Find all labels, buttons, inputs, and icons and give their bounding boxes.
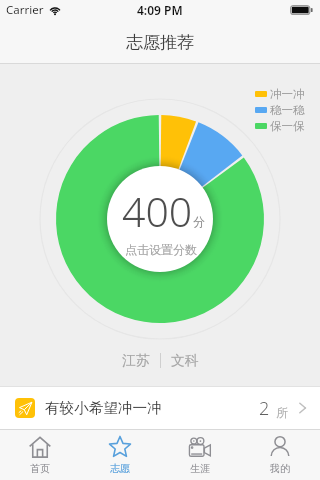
staticText: Carrier: [6, 2, 44, 18]
staticText: 志愿: [110, 462, 130, 475]
staticText: 志愿推荐: [126, 32, 194, 53]
button[interactable]: 我的: [240, 430, 320, 480]
staticText: 分: [193, 214, 205, 229]
staticText: 生涯: [190, 462, 210, 475]
staticText: 4:09 PM: [137, 2, 183, 18]
staticText: 江苏: [122, 352, 150, 369]
button[interactable]: 生涯: [160, 430, 240, 480]
staticText: 点击设置分数: [125, 242, 197, 257]
button[interactable]: 有较小希望冲一冲: [0, 387, 320, 429]
button[interactable]: 400: [107, 166, 213, 272]
staticText: 文科: [171, 352, 199, 369]
staticText: 冲一冲: [270, 87, 305, 101]
staticText: 有较小希望冲一冲: [45, 399, 162, 417]
staticText: 400: [122, 183, 193, 239]
button[interactable]: 首页: [0, 430, 80, 480]
staticText: 2: [259, 396, 270, 421]
button[interactable]: 志愿: [80, 430, 160, 480]
staticText: 稳一稳: [270, 103, 305, 117]
staticText: 保一保: [270, 119, 305, 133]
staticText: 所: [276, 405, 288, 420]
staticText: 我的: [270, 462, 290, 475]
staticText: 首页: [30, 462, 50, 475]
